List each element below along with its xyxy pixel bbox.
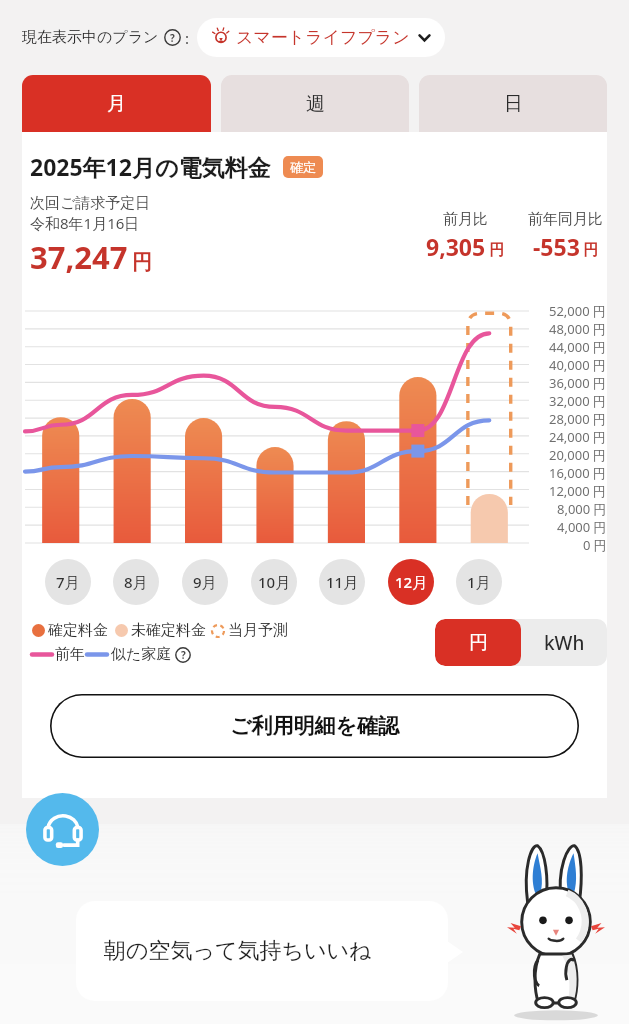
staticText: 円 [132,250,152,275]
staticText: 月 [107,92,126,116]
staticText: : [185,28,190,48]
staticText: 10月 [258,572,291,592]
staticText: 次回ご請求予定日 [30,194,151,213]
button[interactable]: ヘルプ [164,29,181,46]
button[interactable]: 7月 [45,559,91,605]
staticText: 4,000 円 [557,518,607,536]
staticText: 9月 [193,572,217,592]
staticText: 16,000 円 [549,464,607,482]
button[interactable]: 1月 [456,559,502,605]
staticText: 未確定料金 [131,621,206,640]
staticText: 36,000 円 [549,374,607,392]
button[interactable]: 9月 [182,559,228,605]
button[interactable]: 月 [22,75,211,132]
staticText: 令和8年1月16日 [30,213,140,233]
button[interactable]: 朝の空気って気持ちいいね [76,901,448,1001]
staticText: 52,000 円 [549,302,607,320]
staticText: 2025年12月の電気料金 [30,151,271,182]
button[interactable]: スマートライフプラン [197,18,445,57]
staticText: 8,000 円 [557,500,607,518]
staticText: 24,000 円 [549,428,607,446]
staticText: 20,000 円 [549,446,607,464]
staticText: 当月予測 [228,621,288,640]
staticText: 前年 [55,645,85,664]
staticText: 8月 [124,572,148,592]
staticText: 37,247 [30,236,128,278]
staticText: 48,000 円 [549,320,607,338]
staticText: ? [170,31,175,45]
button[interactable]: 週 [221,75,409,132]
button[interactable]: ご利用明細を確認 [50,694,579,758]
staticText: 1月 [467,572,491,592]
staticText: 円 [489,241,504,260]
staticText: 12月 [395,572,428,592]
staticText: 確定料金 [48,621,108,640]
staticText: ? [181,648,186,662]
button[interactable]: 似た家庭について [175,647,191,663]
button[interactable]: kWh [521,619,607,666]
button[interactable]: 8月 [113,559,159,605]
staticText: 日 [504,92,523,116]
button[interactable]: 11月 [319,559,365,605]
staticText: 7月 [56,572,80,592]
staticText: 12,000 円 [549,482,607,500]
staticText: 似た家庭 [111,645,172,664]
staticText: kWh [544,630,585,656]
staticText: ご利用明細を確認 [230,713,399,739]
staticText: 前月比 [443,210,488,229]
staticText: 確定 [290,159,316,175]
staticText: -553 [533,231,580,262]
button[interactable]: 10月 [251,559,297,605]
button[interactable]: 日 [419,75,607,132]
staticText: 40,000 円 [549,356,607,374]
staticText: 32,000 円 [549,392,607,410]
staticText: スマートライフプラン [236,27,410,48]
staticText: 11月 [326,572,359,592]
button[interactable]: 12月 [388,559,434,605]
staticText: 円 [469,631,488,655]
staticText: 9,305 [426,231,486,262]
button[interactable]: サポートに問い合わせ [26,793,99,866]
staticText: 現在表示中のプラン [22,28,159,47]
staticText: 28,000 円 [549,410,607,428]
staticText: 前年同月比 [528,210,603,229]
staticText: 44,000 円 [549,338,607,356]
staticText: 週 [306,92,325,116]
button[interactable]: 円 [435,619,521,666]
staticText: 0 円 [583,536,607,552]
staticText: 朝の空気って気持ちいいね [104,937,372,965]
staticText: 円 [583,241,598,260]
